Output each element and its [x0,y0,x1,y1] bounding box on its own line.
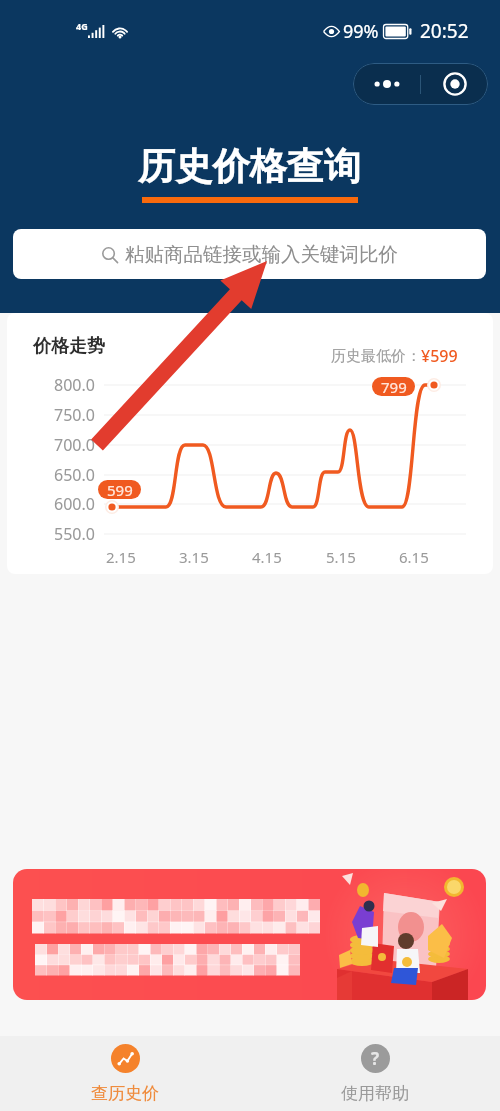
staticText: 历史最低价： [331,347,421,366]
staticText: 799 [381,377,407,396]
staticText: 4.15 [252,547,282,567]
staticText: 价格走势 [33,335,105,358]
staticText: 700.0 [54,434,95,456]
staticText: 550.0 [54,523,95,545]
button[interactable]: 查历史价 [0,1044,250,1104]
staticText: ? [371,1047,380,1070]
staticText: 2.15 [106,547,136,567]
staticText: 6.15 [399,547,429,567]
staticText: 600.0 [54,493,95,515]
staticText: 20:52 [420,18,469,44]
staticText: 650.0 [54,464,95,486]
staticText: 历史价格查询 [138,143,362,190]
staticText: ¥599 [421,345,458,367]
staticText: 3.15 [179,547,209,567]
staticText: 99% [343,19,379,44]
button[interactable]: ? [250,1044,500,1104]
staticText: 查历史价 [91,1083,159,1104]
staticText: 5.15 [326,547,356,567]
button[interactable]: Mini program menu [353,63,488,105]
button[interactable] [13,869,486,1000]
staticText: 使用帮助 [341,1083,409,1104]
staticText: 4G [76,20,88,32]
staticText: 750.0 [54,404,95,426]
staticText: 599 [107,480,133,499]
button[interactable]: 粘贴商品链接或输入关键词比价 [13,229,486,279]
staticText: 800.0 [54,374,95,396]
staticText: 粘贴商品链接或输入关键词比价 [125,242,398,267]
